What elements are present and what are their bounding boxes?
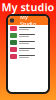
button[interactable] [8, 25, 48, 32]
button[interactable] [8, 53, 48, 60]
button[interactable]: Menu [10, 18, 14, 22]
button[interactable] [8, 39, 48, 46]
staticText: My Studio [20, 13, 36, 28]
staticText: My studio [1, 0, 54, 14]
button[interactable] [8, 46, 48, 53]
button[interactable] [8, 32, 48, 39]
